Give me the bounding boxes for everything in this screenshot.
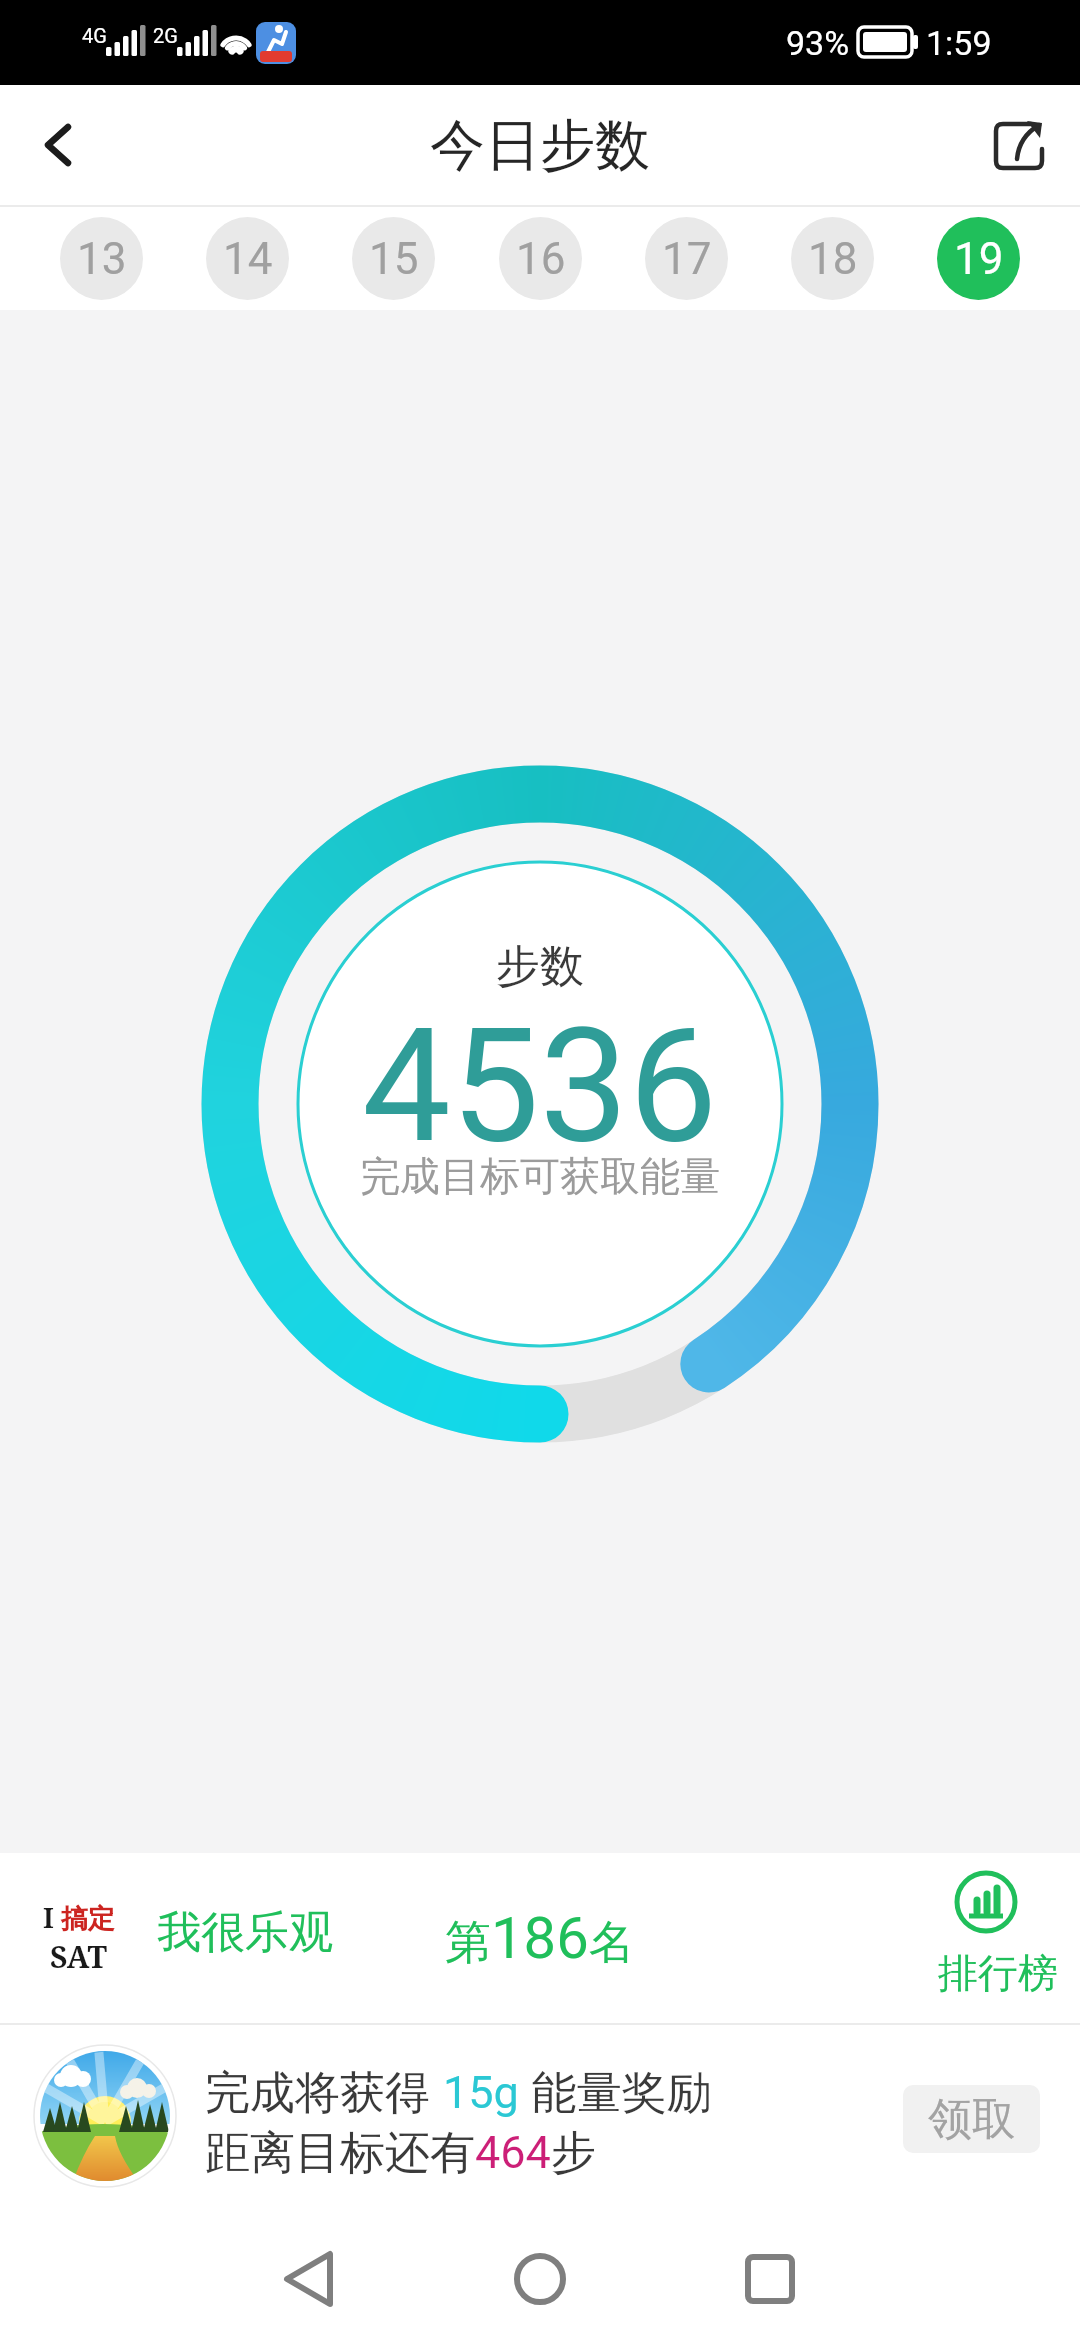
staticText: 领取: [928, 2092, 1016, 2147]
button[interactable]: I 搞定: [0, 1853, 1080, 2023]
button[interactable]: 13: [60, 217, 143, 300]
staticText: 4G: [82, 24, 107, 47]
staticText: 15: [369, 233, 419, 285]
staticText: 完成将获得 15g 能量奖励: [205, 2060, 712, 2120]
staticText: 排行榜: [938, 1948, 1058, 1998]
staticText: 16: [516, 233, 566, 285]
staticText: 完成目标可获取能量: [360, 1151, 720, 1201]
staticText: 18: [808, 233, 858, 285]
button[interactable]: [250, 2218, 370, 2340]
staticText: 13: [77, 233, 127, 285]
staticText: SAT: [50, 1936, 108, 1977]
button[interactable]: 领取: [903, 2085, 1040, 2153]
button[interactable]: [710, 2218, 830, 2340]
button[interactable]: 16: [499, 217, 582, 300]
staticText: 2G: [153, 24, 178, 47]
button[interactable]: [974, 105, 1064, 185]
button[interactable]: 14: [206, 217, 289, 300]
button[interactable]: 15: [352, 217, 435, 300]
staticText: 4536: [362, 993, 718, 1178]
staticText: I 搞定: [43, 1899, 115, 1936]
staticText: 第186名: [445, 1904, 635, 1972]
button[interactable]: 18: [791, 217, 874, 300]
staticText: 93%: [786, 23, 850, 63]
button[interactable]: 17: [645, 217, 728, 300]
button[interactable]: 排行榜: [915, 1853, 1080, 2023]
button[interactable]: [20, 105, 100, 185]
staticText: 1:59: [926, 23, 992, 63]
staticText: 步数: [496, 939, 584, 994]
button[interactable]: 19: [937, 217, 1020, 300]
staticText: 我很乐观: [157, 1905, 333, 1960]
staticText: 17: [662, 233, 712, 285]
staticText: 14: [223, 233, 273, 285]
button[interactable]: [480, 2218, 600, 2340]
staticText: 今日步数: [430, 111, 650, 180]
staticText: 距离目标还有464步: [205, 2125, 596, 2182]
staticText: 19: [954, 233, 1004, 285]
